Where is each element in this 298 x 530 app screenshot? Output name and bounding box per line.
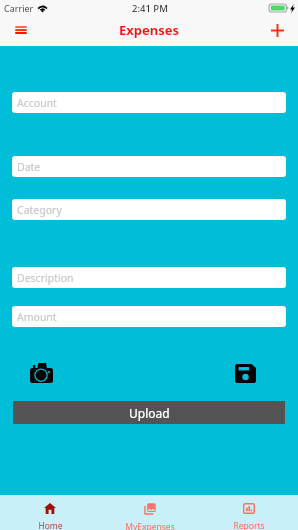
button[interactable]: Description: [12, 267, 286, 288]
staticText: Home: [38, 520, 63, 530]
staticText: Description: [17, 271, 74, 285]
staticText: Reports: [233, 520, 265, 530]
staticText: Carrier: [4, 2, 34, 14]
button[interactable]: Home: [0, 495, 100, 530]
button[interactable]: Date: [12, 156, 286, 177]
staticText: Expenses: [119, 21, 180, 39]
staticText: MyExpenses: [125, 521, 175, 530]
button[interactable]: Category: [12, 199, 286, 220]
staticText: Upload: [129, 405, 170, 421]
button[interactable]: Account: [12, 92, 286, 113]
button[interactable]: Amount: [12, 306, 286, 327]
staticText: Amount: [17, 310, 57, 324]
button[interactable]: Menu: [0, 20, 42, 40]
staticText: Account: [17, 96, 57, 110]
button[interactable]: Take photo: [30, 363, 53, 383]
staticText: Category: [17, 203, 62, 217]
button[interactable]: Upload: [13, 401, 285, 424]
staticText: 2:41 PM: [132, 2, 168, 15]
button[interactable]: Save: [235, 364, 256, 383]
button[interactable]: Add expense: [256, 20, 298, 40]
button[interactable]: MyExpenses: [100, 495, 199, 530]
staticText: Date: [17, 160, 41, 174]
button[interactable]: Reports: [199, 495, 298, 530]
